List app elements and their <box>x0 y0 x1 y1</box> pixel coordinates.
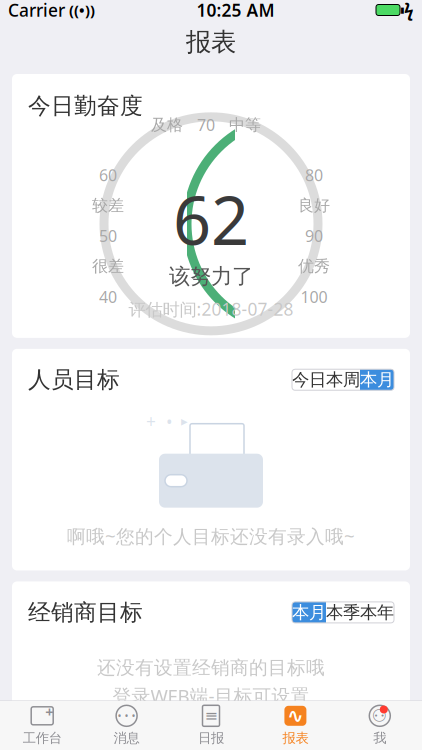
staticText: ϟ <box>404 0 414 21</box>
staticText: 本季 <box>326 602 360 623</box>
staticText: 60 <box>99 164 117 185</box>
staticText: 90 <box>305 225 323 246</box>
staticText: 本年 <box>360 602 394 623</box>
staticText: 登录WEB端-目标可设置 <box>112 683 309 708</box>
staticText: ▸ <box>181 414 188 429</box>
staticText: 40 <box>99 286 117 307</box>
staticText: ∿ <box>287 704 304 727</box>
button[interactable]: • • • <box>84 701 169 750</box>
staticText: • <box>166 410 173 433</box>
staticText: 还没有设置经销商的目标哦 <box>97 656 325 679</box>
staticText: + <box>45 702 53 722</box>
button[interactable]: 本年 <box>360 602 394 623</box>
button[interactable]: 本月 <box>292 602 326 623</box>
staticText: 良好 <box>298 196 330 215</box>
staticText: 我 <box>373 730 386 746</box>
staticText: 消息 <box>114 730 140 746</box>
staticText: 70 <box>197 114 215 135</box>
staticText: ▮ <box>400 5 404 15</box>
button[interactable]: ≡ <box>169 701 253 750</box>
staticText: 62 <box>173 175 249 263</box>
staticText: 很差 <box>92 256 124 276</box>
staticText: 及格 <box>151 115 183 135</box>
staticText: + <box>146 410 156 433</box>
staticText: 经销商目标 <box>28 598 143 626</box>
staticText: 100 <box>300 286 327 307</box>
staticText: 报表 <box>186 26 236 57</box>
staticText: 优秀 <box>298 256 330 276</box>
staticText: 本月 <box>360 369 394 390</box>
staticText: ≡ <box>204 707 217 725</box>
button[interactable]: ∿ <box>253 701 338 750</box>
button[interactable]: 今日 <box>292 369 326 390</box>
staticText: 今日勤奋度 <box>28 92 143 120</box>
staticText: 80 <box>305 164 323 185</box>
staticText: ⚇ <box>372 706 388 726</box>
staticText: 本周 <box>326 369 360 390</box>
staticText: 人员目标 <box>28 366 120 394</box>
staticText: 中等 <box>229 115 261 135</box>
button[interactable]: + <box>0 701 84 750</box>
staticText: 较差 <box>92 196 124 215</box>
staticText: 啊哦~您的个人目标还没有录入哦~ <box>67 524 355 548</box>
staticText: 本月 <box>292 602 326 623</box>
button[interactable]: 本月 <box>360 369 394 390</box>
staticText: 工作台 <box>23 730 62 746</box>
staticText: 该努力了 <box>169 263 253 290</box>
staticText: 报表 <box>282 730 308 746</box>
button[interactable]: ⚇ <box>338 701 422 750</box>
staticText: 50 <box>99 225 117 246</box>
staticText: 今日 <box>292 369 326 390</box>
staticText: • • • <box>118 709 136 723</box>
button[interactable]: 本周 <box>326 369 360 390</box>
staticText: 评估时间:2018-07-28 <box>128 298 293 321</box>
staticText: ((•)) <box>65 0 95 20</box>
staticText: Carrier <box>8 0 65 21</box>
staticText: 日报 <box>198 730 224 746</box>
button[interactable]: 本季 <box>326 602 360 623</box>
staticText: 10:25 AM <box>196 0 274 21</box>
